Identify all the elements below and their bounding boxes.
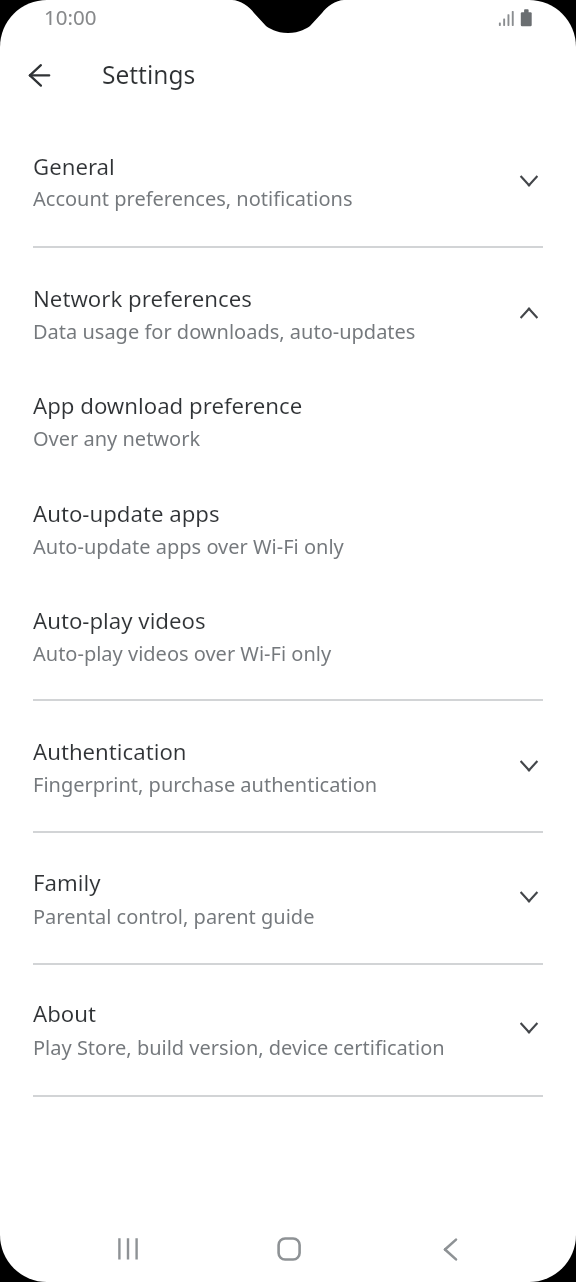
button[interactable]: Home — [251, 1206, 327, 1282]
button[interactable]: Expand — [503, 155, 555, 207]
staticText: App download preference — [33, 390, 303, 420]
staticText: Account preferences, notifications — [33, 185, 353, 212]
staticText: Play Store, build version, device certif… — [33, 1034, 445, 1061]
staticText: 10:00 — [44, 3, 97, 31]
staticText: Over any network — [33, 425, 201, 452]
button[interactable]: Recents — [90, 1206, 166, 1282]
staticText: Auto-play videos over Wi-Fi only — [33, 640, 332, 667]
staticText: Authentication — [33, 736, 187, 766]
staticText: Data usage for downloads, auto-updates — [33, 318, 416, 345]
button[interactable]: Expand — [503, 740, 555, 792]
button[interactable]: Authentication — [0, 717, 576, 799]
button[interactable]: Expand — [503, 871, 555, 923]
button[interactable]: Auto-play videos — [0, 586, 576, 668]
staticText: Fingerprint, purchase authentication — [33, 771, 378, 798]
button[interactable]: Family — [0, 848, 576, 930]
staticText: Family — [33, 867, 101, 897]
button[interactable]: Expand — [503, 1002, 555, 1054]
button[interactable]: About — [0, 979, 576, 1061]
staticText: Parental control, parent guide — [33, 903, 315, 930]
button[interactable]: Back — [412, 1206, 488, 1282]
button[interactable]: Network preferences — [0, 264, 576, 346]
staticText: About — [33, 998, 96, 1028]
staticText: Network preferences — [33, 283, 252, 313]
button[interactable]: Auto-update apps — [0, 479, 576, 561]
staticText: Settings — [102, 58, 196, 91]
button[interactable]: Collapse — [503, 287, 555, 339]
button[interactable]: Back — [15, 51, 63, 99]
staticText: General — [33, 151, 115, 181]
staticText: Auto-update apps — [33, 498, 220, 528]
staticText: Auto-play videos — [33, 605, 206, 635]
staticText: Auto-update apps over Wi-Fi only — [33, 533, 344, 560]
button[interactable]: General — [0, 132, 576, 214]
button[interactable]: App download preference — [0, 371, 576, 453]
